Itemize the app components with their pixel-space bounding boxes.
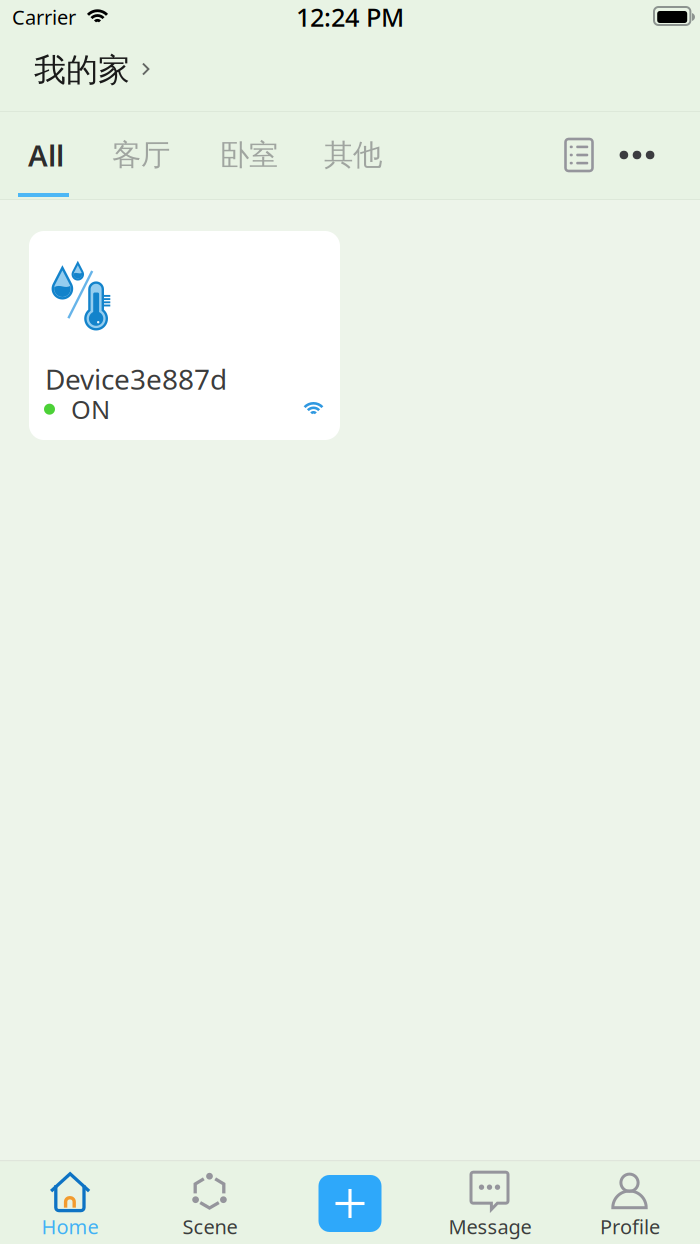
button[interactable]: All	[0, 135, 112, 174]
staticText: 客厅	[112, 137, 170, 173]
staticText: 我的家	[34, 50, 130, 90]
button[interactable]: More options	[596, 137, 659, 173]
staticText: 卧室	[220, 137, 278, 173]
button[interactable]: 客厅	[112, 137, 220, 173]
staticText: All	[28, 135, 64, 174]
button[interactable]: Add device	[280, 1175, 420, 1237]
staticText: 其他	[324, 137, 382, 173]
button[interactable]: 其他	[324, 137, 414, 173]
button[interactable]: Message	[420, 1172, 560, 1240]
staticText: Message	[448, 1213, 531, 1240]
button[interactable]: Scene	[140, 1172, 280, 1240]
staticText: ON	[71, 392, 110, 426]
button[interactable]: 卧室	[220, 137, 324, 173]
staticText: Device3e887d	[45, 360, 227, 397]
staticText: 12:24 PM	[296, 0, 404, 34]
button[interactable]: Home	[0, 1172, 140, 1240]
button[interactable]: Profile	[560, 1172, 700, 1240]
staticText: Home	[41, 1213, 98, 1240]
staticText: Scene	[182, 1213, 237, 1240]
staticText: Profile	[600, 1213, 660, 1240]
button[interactable]: 我的家	[34, 50, 159, 95]
button[interactable]: List view	[562, 137, 596, 173]
button[interactable]: Device3e887d	[29, 231, 340, 440]
staticText: Carrier	[12, 4, 76, 30]
